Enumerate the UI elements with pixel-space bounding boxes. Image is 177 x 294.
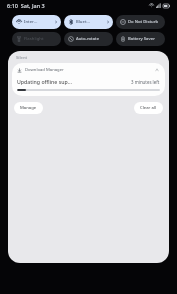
button[interactable]: Internet — [12, 15, 61, 29]
button[interactable]: Do Not Disturb — [116, 15, 165, 29]
button[interactable]: Expand notification — [154, 67, 160, 73]
button[interactable]: Clear all — [134, 102, 163, 114]
button[interactable]: Download Manager — [12, 63, 165, 96]
button[interactable]: Manage — [14, 102, 43, 114]
staticText: Battery Saver — [128, 36, 155, 42]
staticText: Internet — [24, 19, 39, 25]
staticText: Clear all — [140, 105, 157, 111]
staticText: Do Not Disturb — [128, 19, 159, 25]
staticText: Bluetooth — [76, 19, 91, 25]
button[interactable]: Auto-rotate — [64, 32, 113, 46]
button[interactable]: Bluetooth — [64, 15, 113, 29]
staticText: Auto-rotate — [76, 36, 100, 42]
staticText: Updating offline support libraries… — [17, 78, 74, 85]
button[interactable]: Battery Saver — [116, 32, 165, 46]
staticText: Silent — [16, 55, 28, 61]
staticText: 3 minutes left — [131, 79, 160, 85]
button[interactable]: Flashlight — [12, 32, 61, 46]
staticText: 6:10 Sat, Jan 3 — [7, 2, 45, 9]
staticText: Flashlight — [24, 36, 44, 42]
staticText: Download Manager — [25, 67, 64, 73]
staticText: Manage — [20, 105, 37, 111]
